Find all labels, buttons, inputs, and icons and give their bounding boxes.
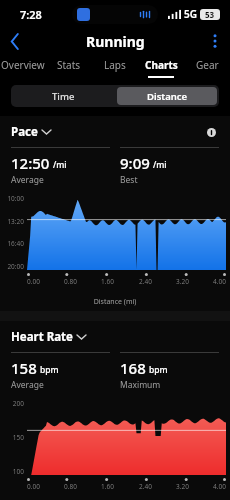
- staticText: 9:09: [120, 153, 150, 173]
- staticText: 53: [205, 9, 215, 20]
- button[interactable]: More options: [200, 28, 230, 54]
- button[interactable]: Laps: [92, 54, 138, 76]
- staticText: 13:20: [0, 217, 24, 226]
- staticText: 12:50: [11, 153, 50, 173]
- staticText: Charts: [145, 58, 178, 72]
- staticText: Pace: [11, 124, 38, 140]
- staticText: Average: [11, 174, 44, 186]
- staticText: 10:00: [0, 194, 24, 203]
- staticText: 150: [0, 433, 24, 442]
- staticText: Heart Rate: [11, 329, 73, 345]
- staticText: Running: [86, 32, 145, 51]
- staticText: Time: [52, 90, 75, 103]
- button[interactable]: Info: [203, 124, 219, 140]
- staticText: 100: [0, 467, 24, 476]
- staticText: 2.40: [139, 277, 152, 286]
- staticText: 5G: [184, 7, 197, 21]
- staticText: bpm: [149, 364, 168, 376]
- button[interactable]: Time: [11, 85, 115, 107]
- button[interactable]: Gear: [184, 54, 230, 76]
- staticText: 1.60: [101, 482, 114, 491]
- staticText: Laps: [104, 58, 126, 72]
- staticText: 2.40: [139, 482, 152, 491]
- button[interactable]: Distance: [117, 87, 217, 105]
- staticText: 168: [120, 358, 146, 378]
- button[interactable]: Overview: [0, 54, 46, 76]
- button[interactable]: Pace: [11, 124, 51, 140]
- staticText: Best: [120, 174, 138, 186]
- staticText: /mi: [53, 159, 67, 171]
- staticText: 0.80: [64, 277, 77, 286]
- staticText: 3.20: [176, 482, 189, 491]
- staticText: 4.00: [213, 482, 226, 491]
- button[interactable]: Stats: [46, 54, 92, 76]
- staticText: 4.00: [213, 277, 226, 286]
- staticText: 158: [11, 358, 37, 378]
- staticText: bpm: [40, 364, 59, 376]
- staticText: 0.00: [27, 482, 40, 491]
- staticText: Overview: [1, 58, 45, 72]
- staticText: 200: [0, 399, 24, 408]
- staticText: Distance: [147, 90, 188, 103]
- button[interactable]: Back: [0, 28, 30, 54]
- staticText: 7:28: [20, 7, 42, 22]
- staticText: 1.60: [101, 277, 114, 286]
- staticText: Average: [11, 379, 44, 391]
- staticText: /mi: [153, 159, 167, 171]
- staticText: Distance (mi): [0, 297, 230, 307]
- staticText: Gear: [196, 58, 219, 72]
- button[interactable]: Heart Rate: [11, 329, 86, 345]
- button[interactable]: Charts: [138, 54, 184, 76]
- staticText: 0.00: [27, 277, 40, 286]
- staticText: 3.20: [176, 277, 189, 286]
- staticText: Stats: [57, 58, 81, 72]
- staticText: 0.80: [64, 482, 77, 491]
- staticText: Maximum: [120, 379, 161, 391]
- staticText: 16:40: [0, 239, 24, 248]
- staticText: 20:00: [0, 262, 24, 271]
